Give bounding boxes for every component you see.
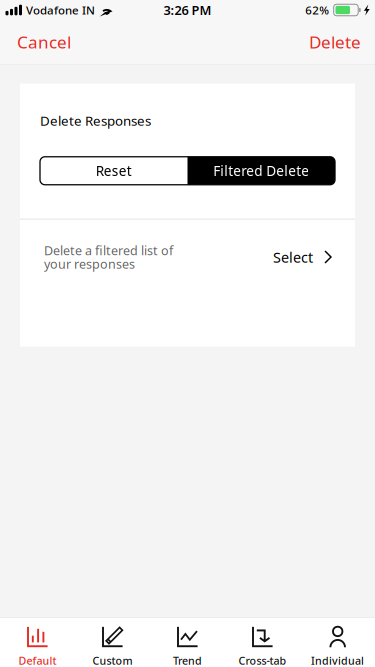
- button[interactable]: Delete a filtered list of: [20, 220, 355, 295]
- button[interactable]: Cross-tab: [225, 618, 300, 667]
- button[interactable]: Individual: [300, 618, 375, 667]
- staticText: Delete Responses: [40, 112, 151, 130]
- staticText: Delete: [309, 30, 361, 54]
- button[interactable]: Filtered Delete: [187, 157, 335, 185]
- button[interactable]: Delete: [295, 20, 375, 64]
- button[interactable]: Cancel: [0, 20, 88, 64]
- button[interactable]: Trend: [150, 618, 225, 667]
- button[interactable]: Reset: [40, 157, 187, 185]
- button[interactable]: Default: [0, 618, 75, 667]
- staticText: 3:26 PM: [163, 1, 211, 19]
- staticText: Trend: [173, 653, 202, 667]
- staticText: Custom: [92, 653, 132, 667]
- staticText: Select: [273, 247, 313, 267]
- staticText: Cancel: [17, 30, 71, 54]
- staticText: Default: [18, 653, 56, 667]
- staticText: 62%: [305, 2, 329, 18]
- staticText: Vodafone IN: [26, 2, 95, 18]
- staticText: Reset: [96, 161, 132, 180]
- button[interactable]: Custom: [75, 618, 150, 667]
- staticText: Individual: [311, 653, 364, 667]
- staticText: Cross-tab: [238, 653, 286, 667]
- staticText: Delete a filtered list of: [44, 242, 173, 259]
- staticText: Filtered Delete: [213, 161, 309, 180]
- staticText: your responses: [44, 255, 135, 272]
